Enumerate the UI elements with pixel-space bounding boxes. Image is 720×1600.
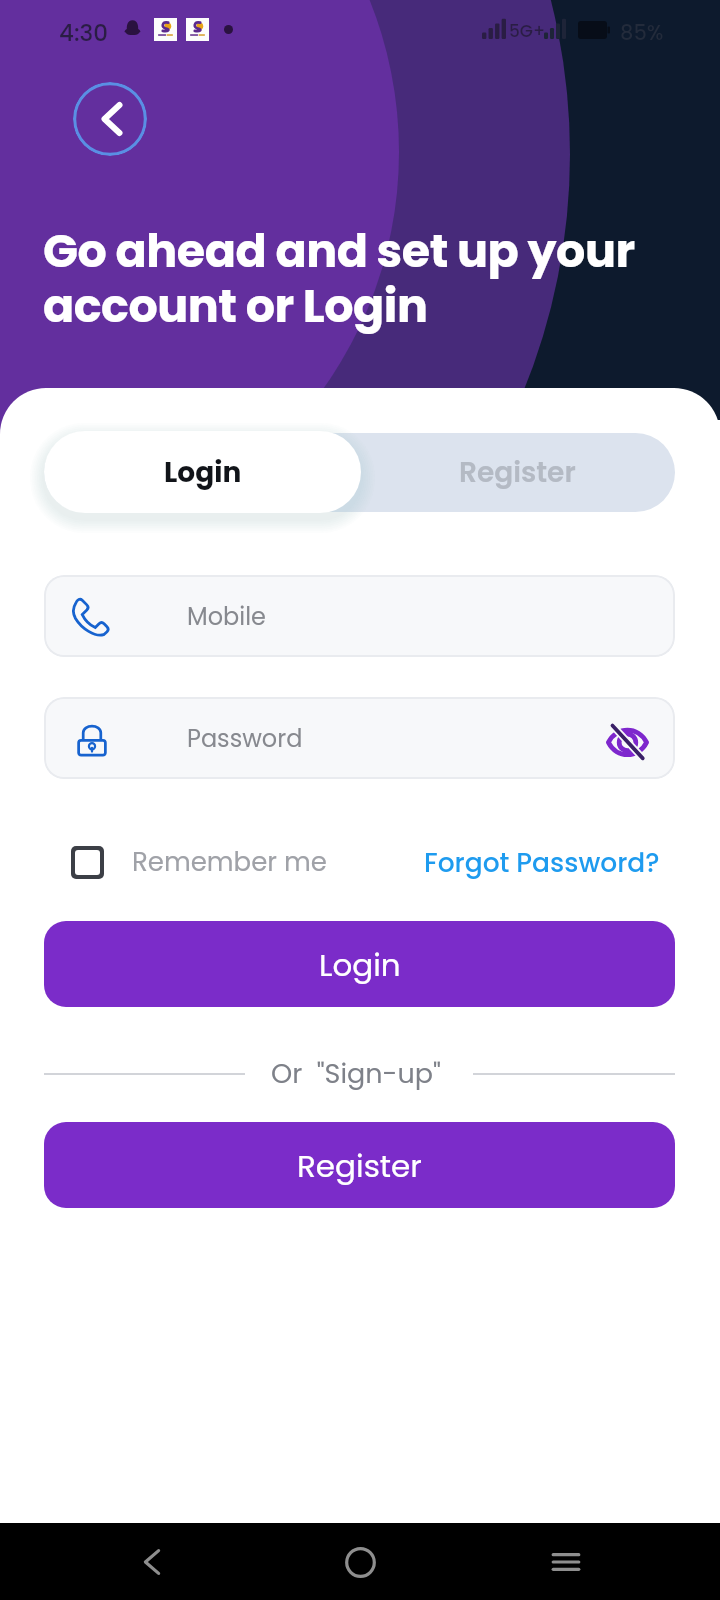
staticText: 85% (620, 18, 664, 47)
button[interactable]: Back (120, 1530, 184, 1594)
button[interactable]: Back (73, 82, 147, 156)
staticText: Remember me (132, 844, 327, 880)
button[interactable]: Forgot Password? (424, 838, 660, 886)
button[interactable]: Register (44, 1122, 675, 1208)
staticText: Go ahead and set up your account or Logi… (43, 219, 635, 338)
staticText: Login (164, 453, 242, 492)
button[interactable]: Home (328, 1530, 392, 1594)
staticText: Forgot Password? (424, 844, 660, 881)
button[interactable]: Login (44, 921, 675, 1007)
staticText: Register (459, 453, 576, 492)
staticText: Login (319, 943, 401, 986)
staticText: Or "Sign-up" (271, 1055, 441, 1093)
button[interactable]: Remember me (71, 838, 720, 886)
staticText: Mobile (187, 600, 266, 634)
staticText: 5G+ (509, 19, 546, 43)
button[interactable]: Mobile (44, 575, 675, 657)
button[interactable]: Show password (600, 714, 654, 768)
button[interactable]: Password (44, 697, 675, 779)
staticText: Password (187, 722, 303, 756)
staticText: 4:30 (59, 17, 108, 49)
button[interactable]: Recent apps (534, 1530, 598, 1594)
staticText: Register (297, 1144, 422, 1187)
button[interactable]: Register (359, 433, 675, 512)
button[interactable]: Login (44, 431, 361, 513)
